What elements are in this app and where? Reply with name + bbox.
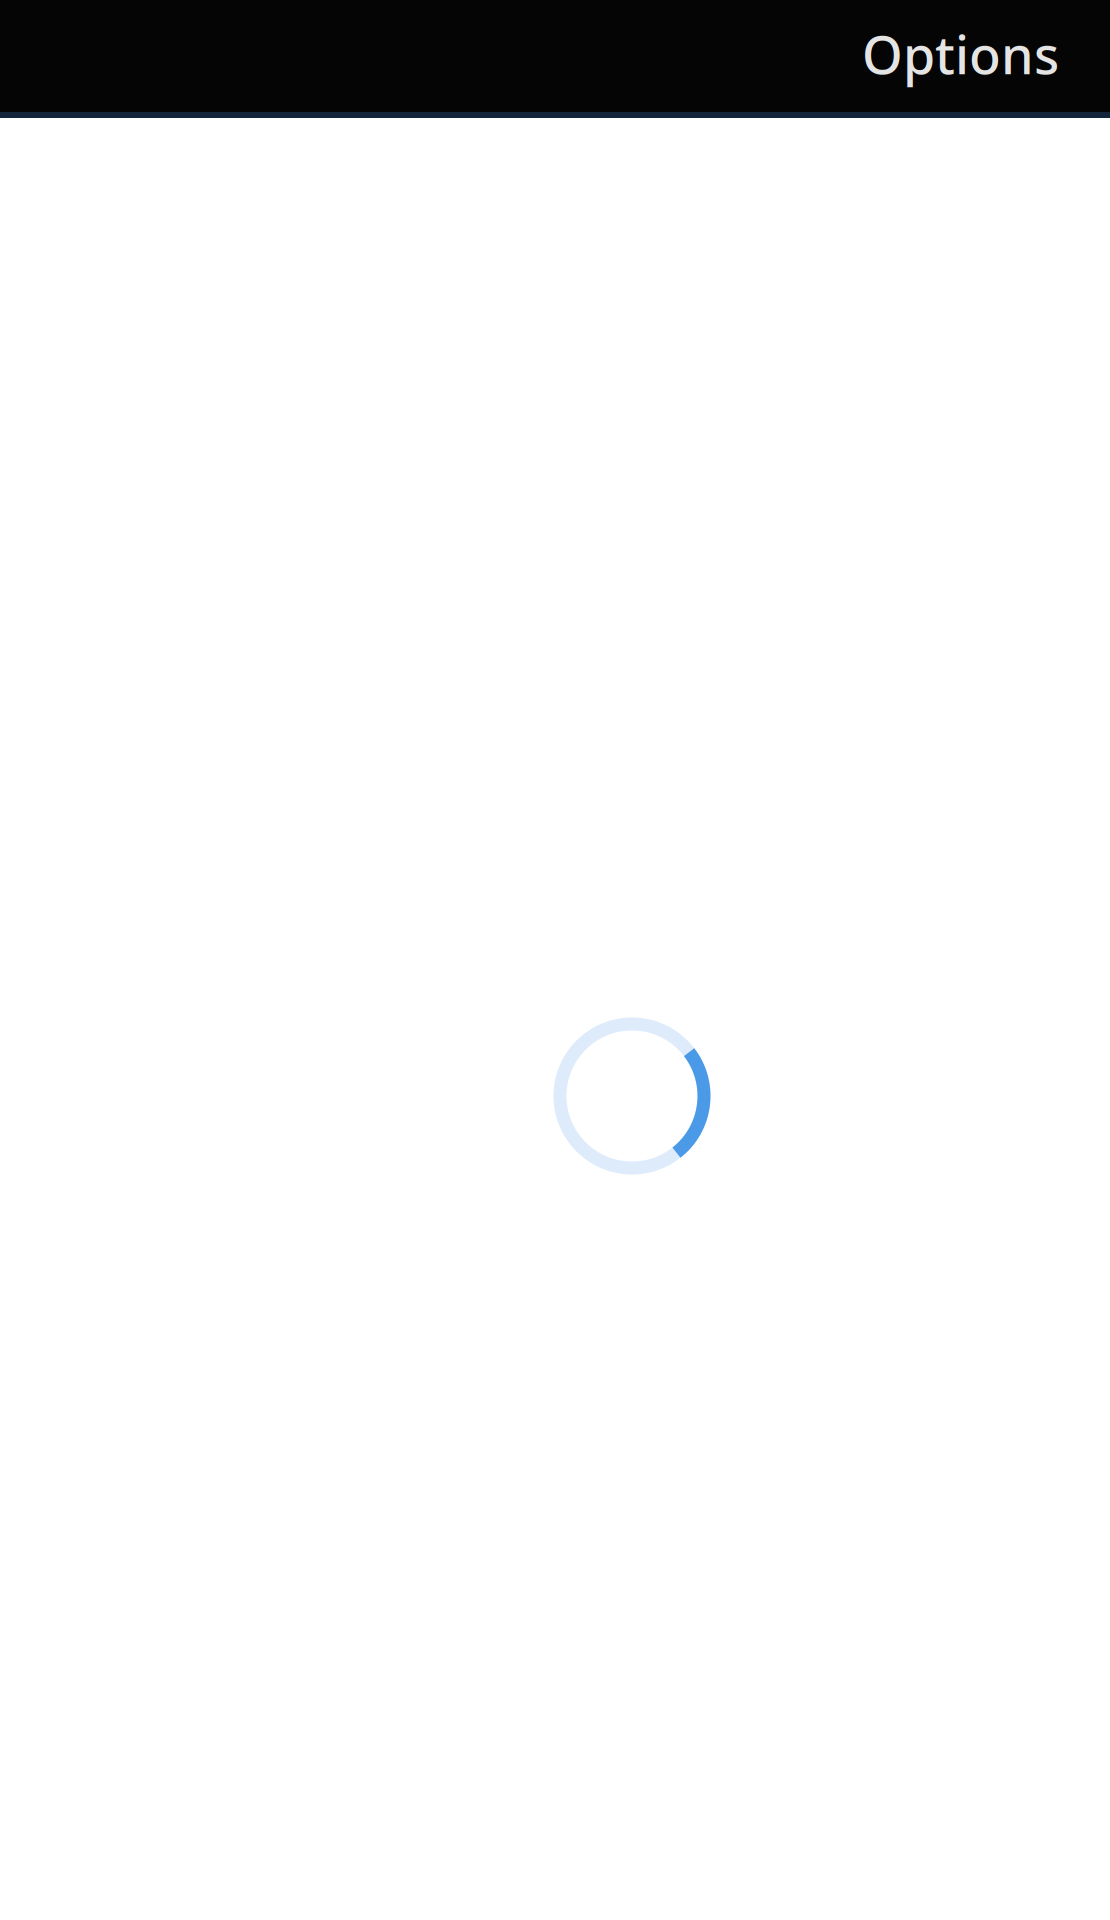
staticText: Options [862,19,1059,89]
button[interactable]: Options [844,7,1077,105]
